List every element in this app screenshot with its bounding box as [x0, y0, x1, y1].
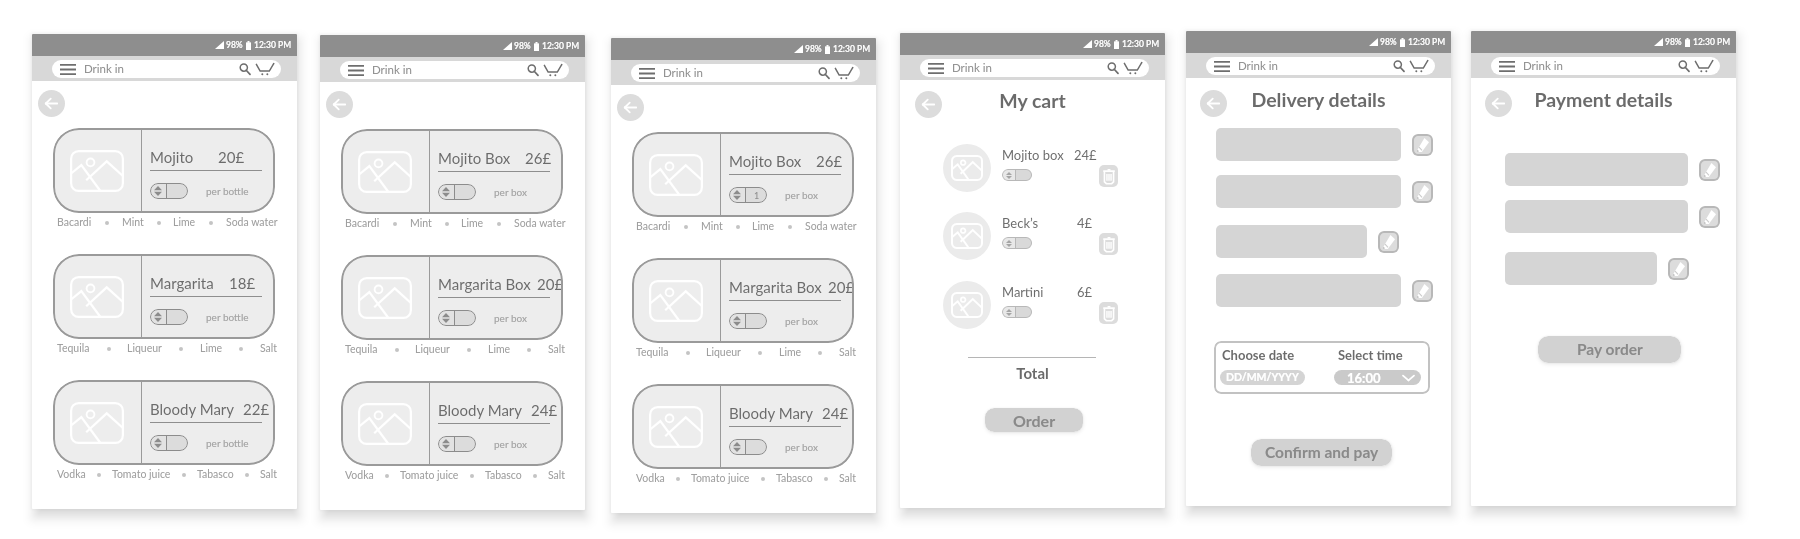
button[interactable]: Back: [617, 94, 644, 121]
staticText: Lime: [779, 346, 802, 359]
button[interactable]: Mojito Box: [341, 129, 563, 214]
button[interactable]: Order: [985, 408, 1083, 432]
button[interactable]: Quantity stepper: [438, 184, 476, 200]
button[interactable]: Quantity stepper: [1002, 306, 1032, 318]
button[interactable]: Menu: [1206, 57, 1435, 75]
staticText: Payment details: [1471, 88, 1736, 111]
button[interactable]: Edit: [1412, 181, 1433, 203]
staticText: Lime: [461, 217, 484, 230]
staticText: 12:30 PM: [1693, 37, 1731, 47]
button[interactable]: Menu: [920, 59, 1149, 77]
staticText: My cart: [900, 89, 1165, 112]
button[interactable]: Quantity stepper: [150, 435, 188, 451]
staticText: Drink in: [663, 66, 703, 80]
button[interactable]: Margarita: [53, 254, 275, 339]
staticText: 20£: [218, 148, 245, 166]
button[interactable]: Edit: [1412, 134, 1433, 156]
staticText: Lime: [173, 216, 196, 229]
button[interactable]: Pay order: [1538, 336, 1681, 363]
other: Menu: [1499, 61, 1515, 72]
button[interactable]: Back: [38, 90, 65, 117]
staticText: Soda water: [805, 220, 857, 233]
staticText: Drink in: [952, 61, 992, 75]
button[interactable]: Bloody Mary: [341, 381, 563, 466]
other: Menu: [1214, 61, 1230, 72]
button[interactable]: Delete: [1099, 233, 1118, 255]
button[interactable]: Quantity stepper: [150, 309, 188, 325]
button[interactable]: Edit: [1668, 258, 1689, 280]
button[interactable]: Margarita Box: [341, 255, 563, 340]
staticText: Liqueur: [127, 342, 162, 355]
button[interactable]: Back: [326, 91, 353, 118]
staticText: per box: [494, 312, 527, 324]
other: Search: [1678, 60, 1690, 72]
staticText: per bottle: [206, 437, 249, 449]
button[interactable]: Margarita Box: [632, 258, 854, 343]
staticText: 20£: [537, 275, 563, 293]
button[interactable]: Mojito Box: [632, 132, 854, 217]
button[interactable]: Bloody Mary: [53, 380, 275, 465]
button[interactable]: Edit: [1378, 231, 1399, 253]
other: Menu: [348, 65, 364, 76]
button[interactable]: Delete: [1099, 302, 1118, 324]
staticText: Total: [900, 364, 1165, 382]
button[interactable]: Quantity stepper: [438, 436, 476, 452]
staticText: Bloody Mary: [729, 404, 814, 422]
button[interactable]: Quantity stepper: [729, 187, 767, 203]
staticText: 12:30 PM: [1408, 37, 1446, 47]
staticText: 18£: [229, 274, 256, 292]
staticText: Salt: [839, 346, 857, 359]
button[interactable]: Delete: [1099, 165, 1118, 187]
staticText: per bottle: [206, 185, 249, 197]
button[interactable]: Edit: [1412, 280, 1433, 302]
button[interactable]: DD/MM/YYYY: [1220, 370, 1305, 385]
staticText: 98%: [1094, 39, 1111, 49]
staticText: per box: [494, 186, 527, 198]
button[interactable]: Back: [1485, 90, 1512, 117]
other: Menu: [60, 64, 76, 75]
staticText: Martini: [1002, 284, 1044, 300]
staticText: Salt: [548, 469, 566, 482]
staticText: Tabasco: [485, 469, 522, 482]
button[interactable]: Back: [1200, 90, 1227, 117]
button[interactable]: Quantity stepper: [1002, 169, 1032, 181]
button[interactable]: Quantity stepper: [729, 439, 767, 455]
button[interactable]: Back: [915, 91, 942, 118]
staticText: 12:30 PM: [254, 40, 292, 50]
other: Cart: [1124, 62, 1142, 75]
staticText: Bloody Mary: [438, 401, 523, 419]
other: Menu: [928, 63, 944, 74]
button[interactable]: Edit: [1699, 206, 1720, 228]
button[interactable]: Confirm and pay: [1251, 439, 1392, 466]
staticText: 1: [754, 190, 760, 201]
button[interactable]: Bloody Mary: [632, 384, 854, 469]
button[interactable]: Quantity stepper: [150, 183, 188, 199]
button[interactable]: Menu: [631, 64, 860, 82]
staticText: 98%: [1380, 37, 1397, 47]
staticText: Order: [1013, 411, 1056, 430]
staticText: 6£: [1077, 284, 1093, 300]
staticText: Mojito box: [1002, 147, 1064, 163]
button[interactable]: Menu: [52, 60, 281, 78]
other: Cart: [544, 64, 562, 77]
other: Cart: [256, 63, 274, 76]
button[interactable]: Mojito: [53, 128, 275, 213]
button[interactable]: Quantity stepper: [1002, 237, 1032, 249]
button[interactable]: Quantity stepper: [729, 313, 767, 329]
staticText: 12:30 PM: [542, 41, 580, 51]
button[interactable]: 16:00: [1334, 370, 1421, 385]
button[interactable]: Menu: [1491, 57, 1720, 75]
staticText: Salt: [839, 472, 857, 485]
staticText: Vodka: [57, 468, 86, 481]
button[interactable]: Quantity stepper: [438, 310, 476, 326]
button[interactable]: Menu: [340, 61, 569, 79]
button[interactable]: Edit: [1699, 159, 1720, 181]
staticText: Margarita Box: [438, 275, 531, 293]
